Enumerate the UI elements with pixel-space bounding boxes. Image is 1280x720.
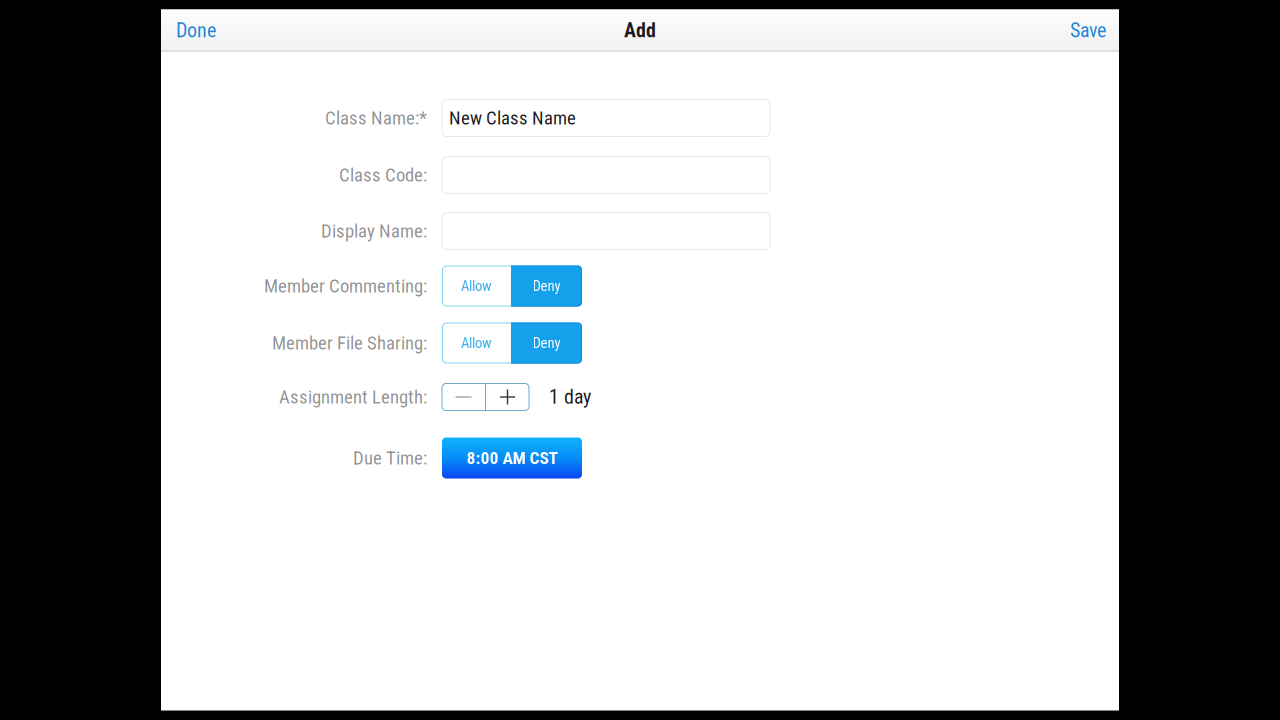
staticText: Display Name: bbox=[321, 220, 427, 242]
staticText: Member Commenting: bbox=[264, 275, 427, 297]
staticText: Done bbox=[176, 19, 216, 42]
staticText: Due Time: bbox=[353, 447, 427, 469]
staticText: Class Code: bbox=[339, 164, 427, 186]
staticText: Allow bbox=[461, 334, 492, 352]
button[interactable]: Allow bbox=[442, 322, 511, 363]
staticText: 8:00 AM CST bbox=[466, 448, 557, 468]
button[interactable]: Save bbox=[1060, 11, 1119, 50]
button[interactable]: Allow bbox=[442, 265, 511, 306]
staticText: Member File Sharing: bbox=[272, 332, 427, 354]
staticText: New Class Name bbox=[449, 107, 576, 129]
button[interactable]: Increase assignment length bbox=[486, 383, 529, 410]
button[interactable]: Done bbox=[161, 11, 226, 50]
button[interactable]: Class Name bbox=[442, 99, 770, 136]
staticText: Assignment Length: bbox=[279, 386, 427, 408]
staticText: Allow bbox=[461, 277, 492, 295]
staticText: Add bbox=[624, 19, 656, 42]
button[interactable]: Deny bbox=[511, 265, 582, 306]
staticText: Deny bbox=[532, 334, 560, 352]
button[interactable]: Class Code bbox=[442, 156, 770, 193]
button[interactable]: Deny bbox=[511, 322, 582, 363]
staticText: Save bbox=[1070, 19, 1106, 42]
button[interactable]: 8:00 AM CST bbox=[442, 437, 582, 478]
button[interactable]: Display Name bbox=[442, 212, 770, 249]
staticText: Deny bbox=[532, 277, 560, 295]
staticText: Class Name:* bbox=[325, 107, 427, 129]
button[interactable]: Decrease assignment length bbox=[442, 383, 485, 410]
staticText: 1 day bbox=[549, 385, 591, 409]
